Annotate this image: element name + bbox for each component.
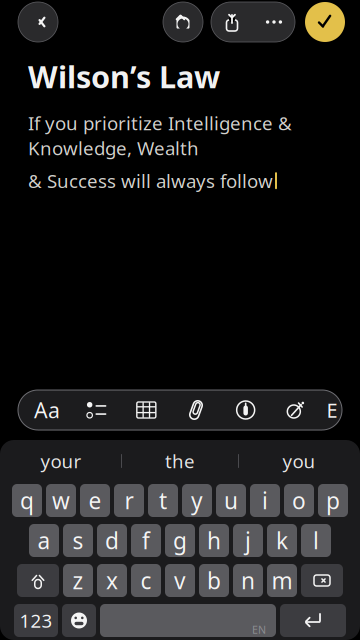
button[interactable]: y (182, 484, 212, 517)
staticText: y (191, 485, 203, 515)
staticText: v (174, 565, 186, 595)
button[interactable]: Emoji (62, 604, 96, 637)
staticText: c (140, 565, 151, 595)
button[interactable]: Attach (179, 393, 213, 427)
button[interactable]: Return (280, 604, 346, 637)
button[interactable]: u (216, 484, 246, 517)
staticText: p (326, 485, 340, 515)
staticText: b (207, 565, 221, 595)
button[interactable]: Delete (301, 564, 343, 597)
button[interactable]: o (284, 484, 314, 517)
button[interactable]: Undo (163, 2, 203, 42)
button[interactable]: Markup (229, 393, 263, 427)
staticText: r (124, 485, 133, 515)
staticText: z (72, 565, 83, 595)
staticText: f (142, 525, 150, 555)
button[interactable]: w (46, 484, 76, 517)
staticText: If you prioritize Intelligence & Knowled… (28, 111, 292, 160)
button[interactable]: g (165, 524, 195, 557)
button[interactable]: Share (211, 2, 253, 42)
button[interactable]: j (233, 524, 263, 557)
button[interactable]: 123 (14, 604, 58, 637)
button[interactable]: i (250, 484, 280, 517)
button[interactable]: Table (129, 393, 163, 427)
staticText: & Success will always follow (28, 168, 273, 193)
staticText: EN (252, 622, 266, 637)
staticText: i (262, 485, 268, 515)
staticText: Aa (34, 396, 60, 424)
button[interactable]: x (97, 564, 127, 597)
button[interactable]: b (199, 564, 229, 597)
staticText: s (72, 525, 83, 555)
button[interactable]: t (148, 484, 178, 517)
staticText: x (106, 565, 118, 595)
button[interactable]: q (12, 484, 42, 517)
staticText: m (271, 565, 292, 595)
button[interactable]: you (239, 446, 359, 476)
button[interactable]: Shift (17, 564, 59, 597)
staticText: u (224, 485, 238, 515)
button[interactable]: d (97, 524, 127, 557)
staticText: g (173, 525, 187, 555)
staticText: e (88, 485, 101, 515)
button[interactable]: Done (305, 2, 345, 42)
staticText: l (313, 525, 319, 555)
staticText: you (282, 449, 315, 473)
staticText: the (165, 449, 195, 473)
button[interactable]: f (131, 524, 161, 557)
staticText: k (276, 525, 288, 555)
button[interactable]: l (301, 524, 331, 557)
staticText: q (20, 485, 34, 515)
button[interactable]: z (63, 564, 93, 597)
staticText: 123 (19, 608, 52, 633)
staticText: E (326, 397, 337, 423)
staticText: n (241, 565, 255, 595)
button[interactable]: p (318, 484, 348, 517)
button[interactable]: your (1, 446, 121, 476)
staticText: w (52, 485, 70, 515)
button[interactable]: c (131, 564, 161, 597)
button[interactable]: the (122, 446, 238, 476)
button[interactable]: v (165, 564, 195, 597)
button[interactable]: m (267, 564, 297, 597)
button[interactable]: e (80, 484, 110, 517)
button[interactable]: a (29, 524, 59, 557)
staticText: Wilson’s Law (28, 56, 220, 97)
button[interactable]: h (199, 524, 229, 557)
button[interactable]: n (233, 564, 263, 597)
staticText: a (37, 525, 50, 555)
button[interactable]: Space (100, 604, 276, 637)
button[interactable]: k (267, 524, 297, 557)
staticText: d (105, 525, 119, 555)
staticText: o (292, 485, 306, 515)
button[interactable]: More (253, 2, 295, 42)
staticText: t (159, 485, 167, 515)
button[interactable]: r (114, 484, 144, 517)
staticText: j (245, 525, 251, 555)
staticText: your (40, 449, 81, 473)
button[interactable]: Back (18, 2, 58, 42)
button[interactable]: Scan (278, 393, 312, 427)
button[interactable]: Text format (30, 393, 64, 427)
button[interactable]: s (63, 524, 93, 557)
staticText: h (207, 525, 221, 555)
button[interactable]: Checklist (80, 393, 114, 427)
